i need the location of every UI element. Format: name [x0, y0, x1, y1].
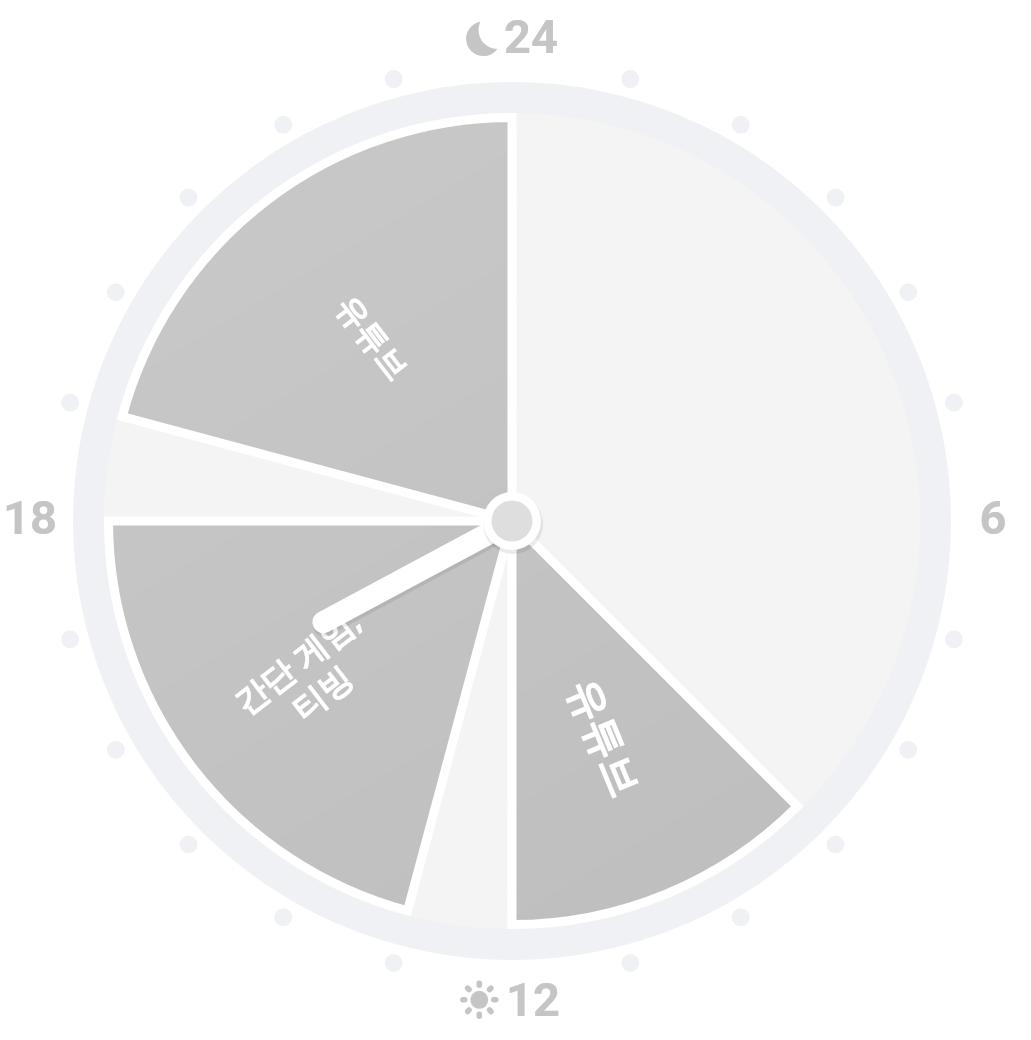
- button[interactable]: 24 hour usage clock: [0, 0, 1031, 1040]
